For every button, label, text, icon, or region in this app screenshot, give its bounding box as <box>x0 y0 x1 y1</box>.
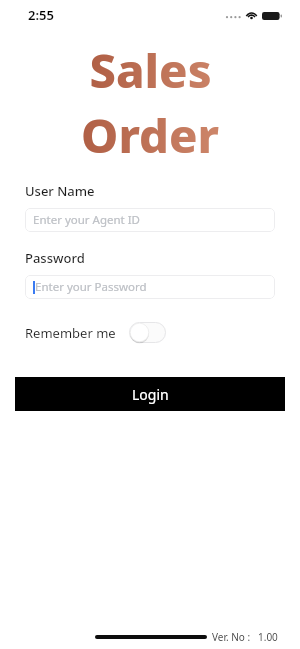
staticText: Password <box>25 249 85 267</box>
button[interactable]: Enter your Password <box>25 275 275 299</box>
staticText: 2:55 <box>28 6 54 24</box>
staticText: Login <box>132 385 169 404</box>
staticText: Order <box>81 103 219 167</box>
button[interactable]: Remember me toggle <box>129 322 166 343</box>
staticText: Remember me <box>25 324 116 342</box>
staticText: Sales <box>89 38 212 102</box>
button[interactable]: Remember me <box>25 322 166 343</box>
staticText: User Name <box>25 182 95 200</box>
button[interactable]: Login <box>15 377 285 411</box>
staticText: Ver. No : 1.00 <box>212 630 278 644</box>
staticText: Enter your Password <box>35 279 147 295</box>
staticText: Enter your Agent ID <box>33 212 140 228</box>
button[interactable]: Enter your Agent ID <box>25 208 275 232</box>
